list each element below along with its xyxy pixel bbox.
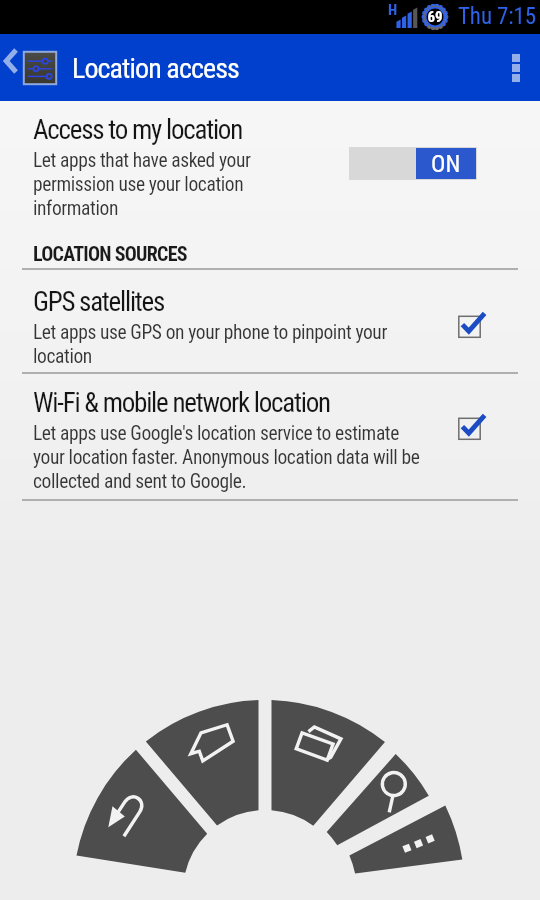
staticText: Thu 7:15: [458, 3, 537, 30]
staticText: LOCATION SOURCES: [33, 242, 187, 265]
button[interactable]: Access to my location: [0, 105, 540, 240]
staticText: GPS satellites: [33, 286, 165, 318]
staticText: ON: [431, 150, 461, 178]
button[interactable]: Wi-Fi & mobile network location: [0, 374, 540, 500]
other: Enabled: [456, 410, 490, 444]
button[interactable]: GPS satellites: [0, 270, 540, 372]
staticText: Let apps use GPS on your phone to pinpoi…: [33, 321, 427, 368]
staticText: Let apps that have asked your permission…: [33, 149, 266, 220]
button[interactable]: ON: [349, 147, 477, 180]
other: Enabled: [456, 308, 490, 342]
button[interactable]: Navigate up: [0, 34, 68, 101]
button[interactable]: More options: [492, 34, 540, 101]
staticText: Location access: [72, 52, 239, 85]
staticText: Access to my location: [33, 114, 242, 146]
staticText: 69: [427, 8, 443, 26]
staticText: Let apps use Google's location service t…: [33, 422, 427, 493]
staticText: H: [388, 1, 398, 19]
staticText: Wi-Fi & mobile network location: [33, 387, 330, 419]
